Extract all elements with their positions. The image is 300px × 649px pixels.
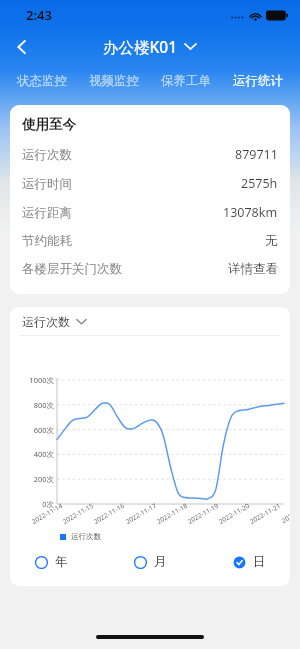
staticText: 879711 (235, 146, 278, 163)
staticText: 节约能耗 (22, 233, 72, 249)
button[interactable]: Back (4, 30, 40, 63)
staticText: 运行次数 (22, 314, 70, 329)
staticText: 详情查看 (228, 261, 278, 277)
staticText: 月 (154, 554, 167, 570)
staticText: 2:43 (26, 6, 52, 24)
staticText: 2022-11-2 (280, 502, 290, 525)
staticText: 200次 (33, 474, 54, 484)
staticText: 各楼层开关门次数 (22, 261, 122, 277)
staticText: 日 (253, 554, 266, 570)
staticText: 保养工单 (161, 73, 211, 89)
button[interactable]: 各楼层开关门次数 (22, 255, 278, 283)
staticText: 无 (265, 233, 278, 249)
staticText: 年 (55, 554, 68, 570)
button[interactable]: 视频监控 (84, 68, 144, 94)
staticText: 运行次数 (22, 147, 72, 163)
staticText: 状态监控 (17, 73, 67, 89)
button[interactable]: 日 (229, 550, 270, 574)
staticText: 办公楼K01 (103, 36, 178, 57)
staticText: 2575h (241, 175, 278, 192)
staticText: 2022-11-20 (217, 501, 251, 526)
staticText: 2022-11-19 (186, 501, 220, 526)
staticText: 2022-11-16 (92, 501, 126, 526)
button[interactable]: 运行统计 (228, 68, 288, 94)
button[interactable]: 年 (31, 550, 72, 574)
button[interactable]: 月 (130, 550, 171, 574)
button[interactable]: 状态监控 (12, 68, 72, 94)
staticText: 运行次数 (71, 532, 101, 541)
staticText: 0次 (42, 499, 54, 509)
button[interactable]: 运行次数 (10, 307, 290, 335)
staticText: 运行时间 (22, 176, 72, 192)
staticText: 运行统计 (233, 73, 283, 89)
button[interactable]: 保养工单 (156, 68, 216, 94)
staticText: 2022-11-17 (124, 501, 158, 526)
staticText: 1000次 (29, 375, 54, 385)
staticText: 800次 (33, 400, 54, 410)
staticText: 2022-11-21 (248, 501, 282, 526)
staticText: 2022-11-14 (30, 501, 64, 526)
staticText: 13078km (223, 204, 278, 221)
staticText: 2022-11-15 (61, 501, 95, 526)
staticText: 600次 (33, 425, 54, 435)
staticText: 400次 (33, 449, 54, 459)
staticText: 使用至今 (22, 116, 76, 133)
button[interactable]: 办公楼K01 (103, 36, 197, 57)
staticText: 运行距离 (22, 205, 72, 221)
staticText: 2022-11-18 (155, 501, 189, 526)
staticText: 视频监控 (89, 73, 139, 89)
